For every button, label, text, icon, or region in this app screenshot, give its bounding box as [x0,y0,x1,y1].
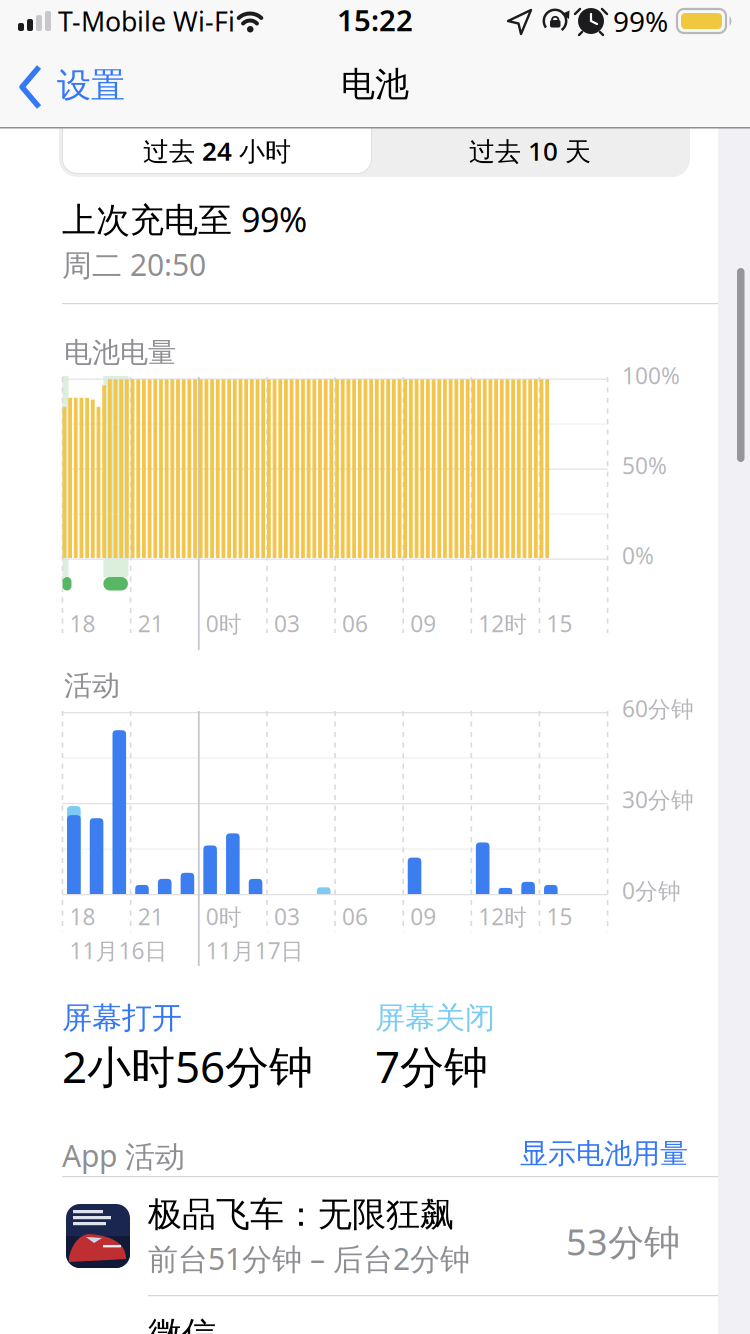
staticText: 03 [274,901,300,932]
staticText: 03 [274,608,300,639]
staticText: 屏幕关闭 [375,999,495,1037]
staticText: 0分钟 [622,875,681,906]
staticText: 09 [410,608,436,639]
staticText: 06 [342,608,368,639]
staticText: 11月17日 [206,935,304,966]
staticText: 21 [138,608,164,639]
staticText: 18 [69,901,95,932]
staticText: 上次充电至 99% [62,196,307,242]
staticText: 极品飞车：无限狂飙 [148,1193,454,1236]
staticText: 12时 [478,901,527,932]
staticText: 屏幕打开 [62,999,182,1037]
staticText: 21 [138,901,164,932]
button[interactable]: 微信 [0,1296,750,1334]
staticText: 15 [546,901,572,932]
staticText: 0时 [206,608,242,639]
staticText: 50% [622,450,667,481]
staticText: 53分钟 [566,1217,680,1266]
staticText: 11月16日 [69,935,167,966]
button[interactable]: 返回设置 [8,55,148,119]
staticText: 7分钟 [375,1036,488,1096]
staticText: 06 [342,901,368,932]
staticText: 12时 [478,608,527,639]
staticText: 电池 [341,63,409,106]
staticText: 活动 [64,668,120,703]
staticText: 60分钟 [622,693,694,724]
staticText: T-Mobile Wi-Fi [58,3,235,39]
staticText: 过去 10 天 [469,133,591,168]
staticText: 设置 [57,64,125,107]
staticText: 显示电池用量 [520,1136,688,1171]
button[interactable]: 极品飞车：无限狂飙 [0,1177,750,1295]
staticText: 15:22 [337,0,413,40]
staticText: 0% [622,540,654,571]
button[interactable]: 过去 10 天 [373,112,688,175]
staticText: 前台51分钟 – 后台2分钟 [148,1238,470,1279]
staticText: 微信 [148,1313,216,1334]
staticText: 100% [622,360,680,391]
staticText: 30分钟 [622,784,694,815]
staticText: 电池电量 [64,335,176,370]
staticText: 09 [410,901,436,932]
staticText: App 活动 [62,1135,185,1176]
staticText: 2小时56分钟 [62,1036,313,1096]
button[interactable]: 过去 24 小时 [61,112,373,175]
staticText: 0时 [206,901,242,932]
staticText: 15 [546,608,572,639]
staticText: 周二 20:50 [62,244,206,285]
staticText: 过去 24 小时 [143,133,291,168]
staticText: 18 [69,608,95,639]
staticText: 99% [613,2,668,40]
button[interactable]: 显示电池用量 [428,1132,688,1172]
